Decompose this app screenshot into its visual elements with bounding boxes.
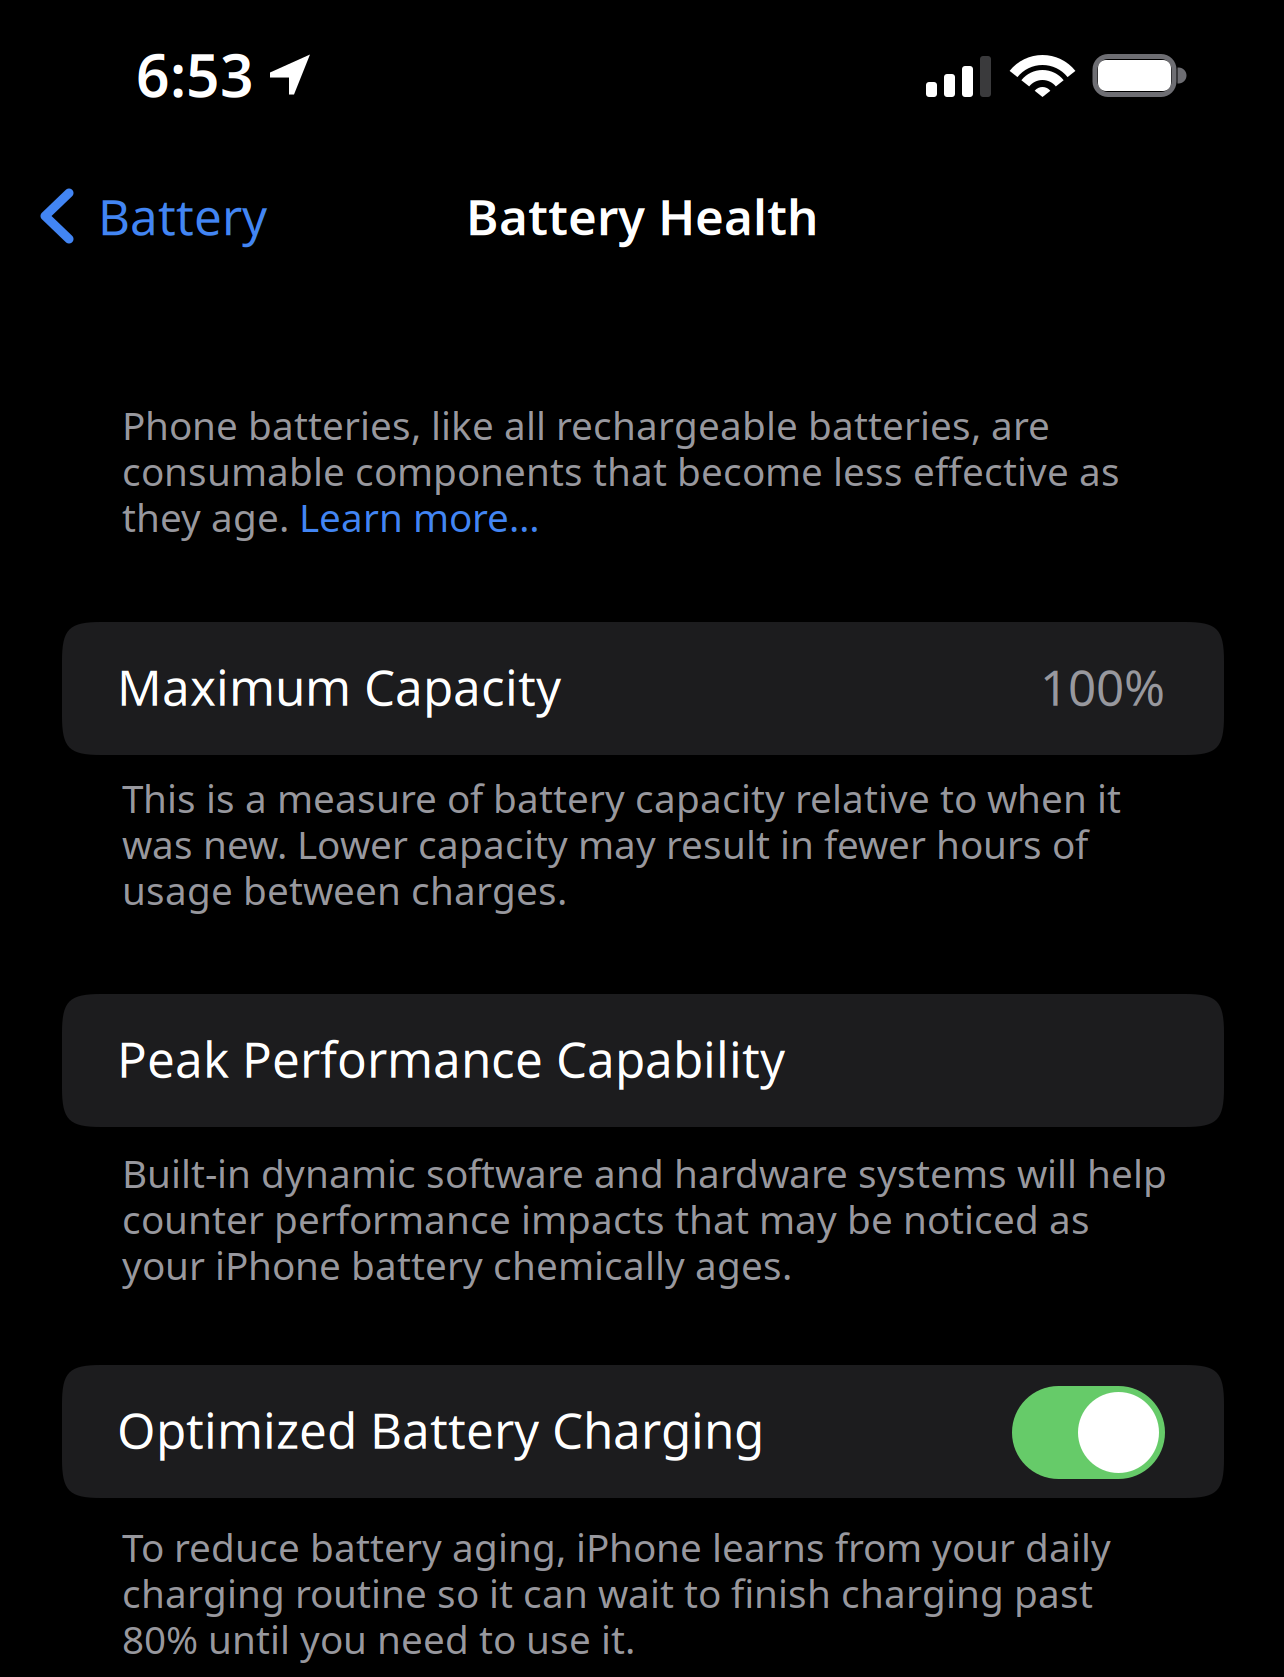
staticText: Maximum Capacity (117, 654, 561, 719)
button[interactable]: Learn more… (299, 491, 540, 543)
staticText: This is a measure of battery capacity re… (122, 772, 1121, 824)
staticText: Battery (98, 183, 267, 249)
staticText: consumable components that become less e… (122, 445, 1120, 497)
staticText: Phone batteries, like all rechargeable b… (122, 399, 1050, 451)
staticText: they age. (122, 491, 299, 543)
staticText: Built-in dynamic software and hardware s… (122, 1147, 1167, 1199)
staticText: counter performance impacts that may be … (122, 1193, 1090, 1245)
staticText: Peak Performance Capability (117, 1026, 785, 1091)
staticText: Battery Health (466, 183, 818, 249)
staticText: 100% (1040, 654, 1165, 719)
staticText: Optimized Battery Charging (117, 1397, 764, 1462)
button[interactable]: Maximum Capacity (62, 622, 1224, 755)
staticText: 80% until you need to use it. (122, 1613, 635, 1665)
button[interactable]: Battery (0, 171, 380, 261)
button[interactable]: Peak Performance Capability (62, 994, 1224, 1127)
staticText: usage between charges. (122, 864, 567, 916)
staticText: was new. Lower capacity may result in fe… (122, 818, 1088, 870)
staticText: your iPhone battery chemically ages. (122, 1239, 792, 1291)
button[interactable]: Optimized Battery Charging (62, 1365, 1224, 1498)
staticText: 6:53 (136, 35, 254, 113)
staticText: To reduce battery aging, iPhone learns f… (122, 1521, 1111, 1573)
staticText: charging routine so it can wait to finis… (122, 1567, 1093, 1619)
staticText: Learn more… (299, 491, 540, 543)
